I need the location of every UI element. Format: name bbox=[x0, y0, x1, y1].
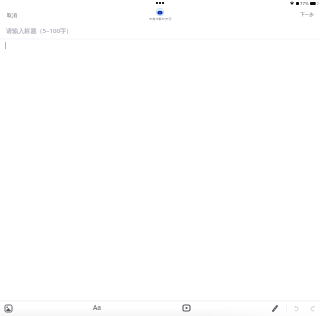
button[interactable]: Sticker bbox=[178, 300, 194, 316]
button[interactable]: Undo bbox=[287, 300, 303, 316]
staticText: 77% bbox=[300, 0, 309, 6]
staticText: Aa bbox=[93, 303, 102, 312]
staticText: 录屏浮窗已开启 bbox=[149, 17, 172, 21]
button[interactable]: Redo bbox=[305, 300, 320, 316]
staticText: 请输入标题（5~100字） bbox=[6, 26, 73, 34]
button[interactable]: 取消 bbox=[1, 9, 23, 21]
button[interactable]: 下一步 bbox=[295, 9, 320, 21]
staticText: 下一步 bbox=[300, 12, 314, 18]
button[interactable]: Pen bbox=[267, 300, 283, 316]
staticText: 取消 bbox=[7, 12, 17, 18]
button[interactable]: Insert image bbox=[0, 300, 16, 316]
button[interactable]: Text format bbox=[89, 299, 105, 315]
